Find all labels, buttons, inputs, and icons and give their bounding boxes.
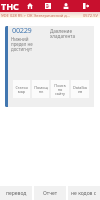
button[interactable]: Home bbox=[24, 0, 36, 12]
button[interactable]: Отчет bbox=[34, 186, 66, 200]
staticText: Поиск по сайту bbox=[54, 83, 66, 96]
staticText: ТНС bbox=[1, 0, 19, 12]
staticText: не кодов с bbox=[71, 190, 97, 197]
button[interactable]: Помощ нк bbox=[32, 80, 49, 98]
staticText: 00229 bbox=[12, 25, 32, 35]
button[interactable]: Account bbox=[60, 0, 72, 12]
button[interactable]: Exit bbox=[80, 0, 92, 12]
button[interactable]: Поиск по сайту bbox=[51, 80, 69, 98]
button[interactable]: Notes bbox=[42, 0, 54, 12]
staticText: перевод bbox=[6, 190, 27, 197]
button[interactable]: не кодов с bbox=[68, 186, 100, 200]
button[interactable]: Статья мар bbox=[13, 80, 30, 98]
staticText: Помощ нк bbox=[34, 85, 48, 94]
staticText: Datalba ев bbox=[73, 85, 87, 94]
staticText: Отчет bbox=[43, 190, 58, 197]
staticText: Статья мар bbox=[15, 85, 28, 94]
staticText: 0572.5V bbox=[83, 13, 98, 18]
staticText: УФЕ 028 R5 > ОК Электрический д... bbox=[1, 13, 70, 18]
staticText: Давление хладагента bbox=[50, 28, 75, 39]
button[interactable]: Datalba ев bbox=[71, 80, 89, 98]
staticText: Нижний предел не достигнут bbox=[11, 36, 33, 52]
button[interactable]: перевод bbox=[0, 186, 32, 200]
